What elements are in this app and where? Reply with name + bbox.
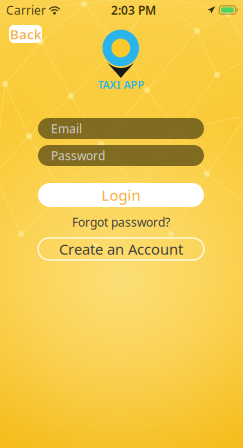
button[interactable]: Login [38, 183, 204, 207]
staticText: Create an Account [59, 239, 183, 259]
button[interactable]: Create an Account [38, 238, 204, 260]
staticText: Email [51, 120, 82, 136]
button[interactable]: Back [9, 25, 42, 43]
staticText: Login [101, 185, 140, 205]
staticText: TAXI APP [97, 77, 144, 92]
staticText: Forgot password? [72, 214, 170, 230]
button[interactable]: Forgot password? [66, 215, 176, 229]
staticText: Password [51, 147, 105, 163]
staticText: 2:03 PM [111, 2, 156, 18]
staticText: Back [10, 25, 41, 43]
staticText: Carrier [6, 2, 46, 18]
